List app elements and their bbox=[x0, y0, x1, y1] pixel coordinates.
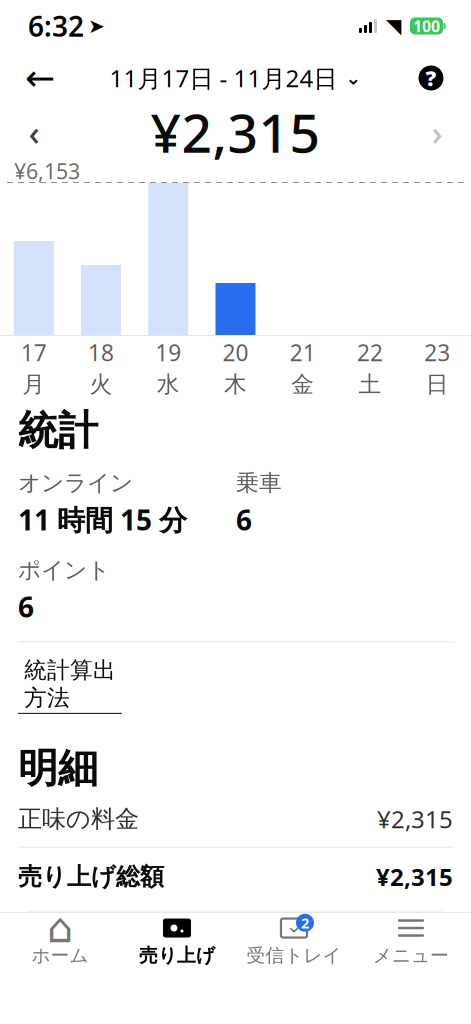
staticText: 6 bbox=[18, 588, 34, 625]
staticText: 売り上げ総額 bbox=[18, 862, 164, 892]
staticText: ← bbox=[25, 58, 55, 98]
staticText: ⌂ bbox=[47, 905, 73, 951]
staticText: 17 bbox=[21, 337, 47, 368]
staticText: ⌄ bbox=[345, 67, 361, 89]
staticText: 100 bbox=[413, 15, 440, 37]
staticText: メニュー bbox=[373, 944, 449, 967]
button[interactable]: 戻る bbox=[18, 56, 62, 100]
staticText: 19 bbox=[155, 337, 181, 368]
button[interactable]: 売り上げ bbox=[118, 913, 235, 969]
staticText: 統計算出方法 bbox=[24, 656, 116, 712]
button[interactable]: ⌄ bbox=[235, 913, 352, 969]
staticText: 売り上げ bbox=[139, 944, 215, 967]
staticText: 11 時間 15 分 bbox=[18, 501, 187, 538]
button[interactable]: ⌂ bbox=[1, 913, 118, 969]
staticText: ホーム bbox=[31, 944, 88, 967]
staticText: 23 bbox=[424, 337, 450, 368]
staticText: 統計 bbox=[18, 406, 98, 455]
staticText: 火 bbox=[89, 371, 112, 398]
button[interactable]: 統計算出方法 bbox=[18, 642, 453, 724]
staticText: ⌄ bbox=[285, 914, 302, 937]
button[interactable]: 次の週 bbox=[417, 109, 457, 155]
staticText: 売り上げ状況を確認する bbox=[95, 931, 375, 962]
staticText: › bbox=[431, 109, 442, 155]
staticText: 金 bbox=[291, 371, 314, 398]
staticText: 20 bbox=[222, 337, 248, 368]
staticText: 18 bbox=[88, 337, 114, 368]
staticText: 22 bbox=[357, 337, 383, 368]
staticText: 土 bbox=[359, 371, 382, 398]
staticText: ◥ bbox=[386, 15, 401, 37]
staticText: 水 bbox=[157, 371, 180, 398]
button[interactable]: 売り上げ状況を確認する bbox=[18, 911, 453, 983]
staticText: 日 bbox=[426, 371, 449, 398]
staticText: 11月17日 - 11月24日 bbox=[109, 62, 337, 94]
staticText: ポイント bbox=[18, 556, 110, 584]
staticText: オンライン bbox=[18, 469, 133, 497]
button[interactable]: 11月17日 - 11月24日 bbox=[103, 56, 367, 100]
staticText: ? bbox=[425, 64, 436, 92]
staticText: 乗車 bbox=[236, 469, 282, 497]
button[interactable]: 前の週 bbox=[14, 109, 54, 155]
staticText: 明細 bbox=[18, 744, 98, 793]
staticText: 6 bbox=[236, 501, 252, 538]
staticText: 月 bbox=[22, 371, 45, 398]
staticText: ¥2,315 bbox=[376, 861, 453, 893]
staticText: ¥2,315 bbox=[150, 97, 320, 167]
staticText: 21 bbox=[290, 337, 316, 368]
staticText: 2 bbox=[301, 913, 309, 932]
staticText: 受信トレイ bbox=[246, 944, 341, 967]
button[interactable]: ヘルプ bbox=[409, 56, 453, 100]
button[interactable]: メニュー bbox=[352, 913, 469, 969]
staticText: ‹ bbox=[28, 109, 39, 155]
staticText: 6:32 bbox=[28, 7, 84, 45]
staticText: 木 bbox=[224, 371, 247, 398]
staticText: 正味の料金 bbox=[18, 804, 139, 834]
staticText: ¥2,315 bbox=[377, 803, 453, 835]
staticText: ¥6,153 bbox=[14, 157, 80, 185]
staticText: ➤ bbox=[88, 15, 105, 37]
